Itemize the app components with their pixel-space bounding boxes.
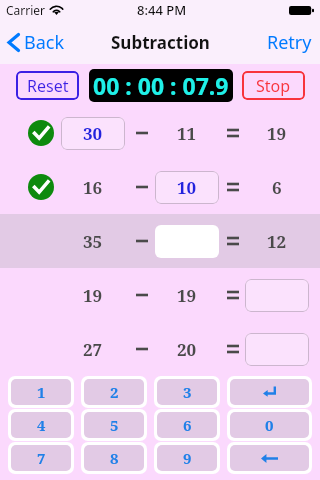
button[interactable]: 9 bbox=[154, 442, 220, 474]
button[interactable]: Answer field bbox=[245, 333, 309, 366]
staticText: Carrier bbox=[6, 2, 46, 18]
staticText: 6 bbox=[183, 415, 192, 435]
staticText: 19 bbox=[177, 284, 197, 307]
staticText: 3 bbox=[183, 382, 192, 402]
button[interactable]: Enter bbox=[227, 376, 312, 408]
staticText: Subtraction bbox=[111, 31, 210, 54]
button[interactable]: 35 bbox=[0, 214, 320, 268]
button[interactable]: 0 bbox=[227, 409, 312, 441]
button[interactable]: 4 bbox=[8, 409, 74, 441]
staticText: 11 bbox=[177, 122, 197, 145]
staticText: Stop bbox=[256, 75, 291, 97]
button[interactable]: Answer field bbox=[245, 279, 309, 312]
staticText: Back bbox=[24, 30, 65, 55]
staticText: 35 bbox=[83, 230, 103, 253]
button[interactable]: Stop bbox=[242, 71, 305, 100]
button[interactable]: 30 bbox=[61, 117, 125, 150]
button[interactable]: 10 bbox=[155, 171, 219, 204]
button[interactable]: Correct bbox=[0, 160, 320, 214]
staticText: 9 bbox=[183, 448, 192, 468]
button[interactable]: 19 bbox=[0, 268, 320, 322]
staticText: 0 bbox=[265, 415, 274, 435]
staticText: 19 bbox=[83, 284, 103, 307]
staticText: 19 bbox=[267, 122, 287, 145]
button[interactable]: Reset bbox=[16, 71, 79, 100]
staticText: 5 bbox=[110, 415, 119, 435]
staticText: 7 bbox=[37, 448, 46, 468]
button[interactable]: Current answer field bbox=[155, 225, 219, 258]
button[interactable]: 7 bbox=[8, 442, 74, 474]
staticText: Reset bbox=[27, 75, 69, 97]
staticText: 8:44 PM bbox=[137, 1, 187, 19]
button[interactable]: 3 bbox=[154, 376, 220, 408]
button[interactable]: Correct bbox=[0, 106, 320, 160]
button[interactable]: Back bbox=[0, 22, 75, 63]
staticText: 00 : 00 : 07.9 bbox=[93, 70, 229, 101]
staticText: 4 bbox=[37, 415, 46, 435]
button[interactable]: 2 bbox=[81, 376, 147, 408]
staticText: 12 bbox=[267, 230, 287, 253]
button[interactable]: Retry bbox=[256, 22, 320, 63]
button[interactable]: Backspace bbox=[227, 442, 312, 474]
button[interactable]: 8 bbox=[81, 442, 147, 474]
button[interactable]: 5 bbox=[81, 409, 147, 441]
other: Correct bbox=[28, 120, 54, 146]
staticText: 10 bbox=[177, 176, 197, 199]
button[interactable]: 27 bbox=[0, 322, 320, 376]
button[interactable]: 1 bbox=[8, 376, 74, 408]
staticText: 8 bbox=[110, 448, 119, 468]
staticText: Retry bbox=[267, 30, 312, 55]
staticText: 2 bbox=[110, 382, 119, 402]
staticText: 30 bbox=[83, 122, 103, 145]
staticText: 20 bbox=[177, 338, 197, 361]
staticText: 27 bbox=[83, 338, 103, 361]
staticText: 6 bbox=[272, 176, 282, 199]
staticText: 16 bbox=[83, 176, 103, 199]
other: Correct bbox=[28, 174, 54, 200]
button[interactable]: 6 bbox=[154, 409, 220, 441]
staticText: 1 bbox=[37, 382, 46, 402]
